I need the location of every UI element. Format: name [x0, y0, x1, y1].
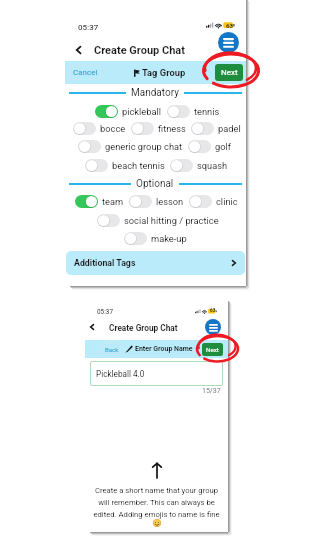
button[interactable]: lesson [129, 195, 184, 208]
button[interactable]: squash [170, 159, 228, 172]
button[interactable]: golf [188, 140, 232, 153]
button[interactable]: bocce [73, 122, 126, 135]
button[interactable]: Next [215, 64, 243, 81]
staticText: squash [197, 160, 228, 171]
button[interactable]: Additional Tags [66, 251, 245, 275]
staticText: Cancel [73, 68, 98, 77]
staticText: lesson [156, 196, 184, 207]
staticText: Optional [136, 178, 174, 190]
staticText: Enter Group Name [135, 345, 193, 353]
staticText: make-up [151, 233, 187, 244]
button[interactable]: Back [85, 320, 98, 333]
button[interactable]: pickleball [95, 105, 162, 118]
button[interactable]: team [75, 195, 124, 208]
staticText: clinic [216, 196, 238, 207]
staticText: golf [215, 141, 232, 152]
staticText: generic group chat [105, 141, 183, 152]
button[interactable]: Menu [218, 32, 239, 53]
staticText: 05:37 [78, 23, 99, 32]
staticText: beach tennis [112, 160, 165, 171]
staticText: Back [105, 346, 119, 353]
staticText: 63 [210, 308, 216, 314]
button[interactable]: Back [102, 343, 121, 355]
button[interactable]: clinic [189, 195, 238, 208]
button[interactable]: Back [71, 42, 86, 57]
staticText: 15/37 [202, 387, 221, 395]
button[interactable]: Next [202, 343, 223, 356]
staticText: Next [206, 346, 219, 353]
staticText: Next [221, 68, 238, 77]
button[interactable]: make-up [124, 232, 187, 245]
staticText: bocce [100, 123, 126, 134]
button[interactable]: Cancel [70, 65, 101, 80]
staticText: Tag Group [142, 67, 186, 78]
staticText: Pickleball 4.0 [96, 369, 145, 379]
button[interactable]: beach tennis [85, 159, 165, 172]
staticText: Create a short name that your group will… [85, 486, 228, 519]
staticText: fitness [158, 123, 186, 134]
staticText: social hitting / practice [124, 215, 219, 226]
staticText: tennis [194, 106, 220, 117]
staticText: Mandatory [131, 87, 179, 99]
staticText: padel [218, 123, 241, 134]
button[interactable]: social hitting / practice [97, 214, 219, 227]
button[interactable]: padel [191, 122, 241, 135]
staticText: pickleball [122, 106, 162, 117]
staticText: team [102, 196, 124, 207]
button[interactable]: fitness [131, 122, 186, 135]
button[interactable]: Pickleball 4.0 [90, 361, 223, 386]
staticText: Additional Tags [74, 258, 136, 268]
staticText: 63 [226, 22, 234, 29]
staticText: Create Group Chat [109, 323, 178, 333]
button[interactable]: tennis [167, 105, 220, 118]
button[interactable]: Menu [205, 319, 221, 335]
staticText: 05:37 [97, 308, 113, 315]
button[interactable]: generic group chat [78, 140, 183, 153]
staticText: Create Group Chat [94, 44, 185, 57]
